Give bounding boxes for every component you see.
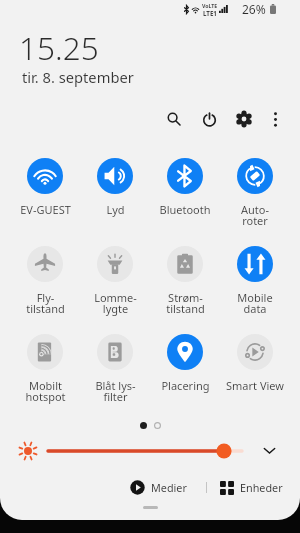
button[interactable]: Enheder [218, 478, 285, 497]
staticText: Blåt lys- filter [95, 378, 136, 405]
button[interactable]: Lomme- lygte [81, 246, 149, 317]
staticText: 26% [242, 1, 266, 17]
staticText: Lomme- lygte [94, 290, 137, 317]
button[interactable]: Settings [231, 106, 257, 132]
button[interactable]: Lyd [81, 158, 149, 217]
button[interactable]: More options [262, 106, 288, 132]
staticText: Mobilt hotspot [25, 378, 66, 405]
staticText: Lyd [106, 202, 125, 217]
staticText: Medier [151, 480, 187, 495]
button[interactable]: Medier [128, 478, 189, 497]
staticText: Placering [161, 378, 210, 393]
button[interactable]: Power [196, 106, 222, 132]
button[interactable]: Mobilt hotspot [11, 334, 79, 405]
button[interactable]: Smart View [221, 334, 289, 393]
staticText: Auto- roter [241, 202, 269, 229]
button[interactable]: Placering [151, 334, 219, 393]
staticText: LTE1 [203, 9, 217, 17]
button[interactable]: Brightness slider [44, 442, 244, 460]
staticText: 15.25 [19, 26, 99, 69]
staticText: Enheder [240, 480, 283, 495]
staticText: Bluetooth [159, 202, 211, 217]
button[interactable]: Bluetooth [151, 158, 219, 217]
button[interactable]: Strøm- tilstand [151, 246, 219, 317]
staticText: Fly- tilstand [26, 290, 65, 317]
staticText: Mobile data [237, 290, 273, 317]
button[interactable]: Brightness [14, 437, 42, 465]
button[interactable]: Fly- tilstand [11, 246, 79, 317]
button[interactable]: Mobile data [221, 246, 289, 317]
button[interactable]: Blåt lys- filter [81, 334, 149, 405]
button[interactable]: EV-GUEST [11, 158, 79, 217]
staticText: Smart View [226, 378, 284, 393]
staticText: tir. 8. september [22, 67, 134, 87]
button[interactable]: Auto- roter [221, 158, 289, 229]
staticText: VoLTE [202, 2, 218, 9]
staticText: Strøm- tilstand [166, 290, 205, 317]
button[interactable]: Search [161, 106, 187, 132]
staticText: EV-GUEST [20, 202, 71, 217]
button[interactable]: Expand [256, 437, 282, 463]
